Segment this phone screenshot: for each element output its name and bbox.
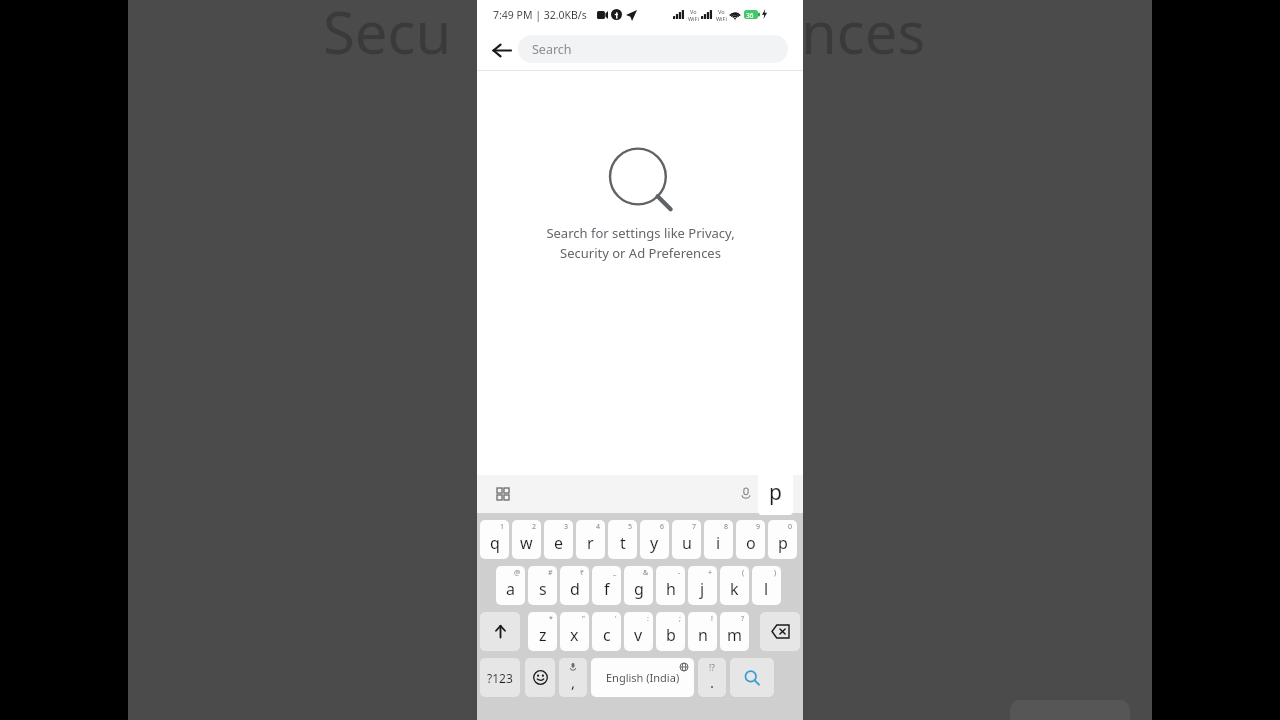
button[interactable]: Backspace — [760, 612, 800, 651]
staticText: q — [490, 532, 500, 554]
staticText: t — [620, 532, 626, 554]
button[interactable]: 6 — [640, 520, 669, 559]
staticText: f — [604, 578, 610, 600]
button[interactable]: 0 — [768, 520, 797, 559]
staticText: : — [647, 614, 649, 624]
button[interactable]: Voice input — [733, 481, 759, 507]
staticText: Vo — [718, 8, 725, 15]
staticText: Search — [532, 41, 572, 58]
staticText: 7:49 PM | 32.0KB/s — [493, 8, 587, 22]
button[interactable]: # — [528, 566, 557, 605]
staticText: r — [587, 532, 594, 554]
button[interactable]: ! — [688, 612, 717, 651]
staticText: ) — [774, 568, 777, 578]
staticText: w — [520, 532, 533, 554]
staticText: . — [710, 672, 715, 692]
staticText: p — [778, 532, 788, 554]
staticText: 5 — [628, 522, 633, 532]
staticText: d — [570, 578, 580, 600]
button[interactable]: Emoji — [525, 658, 555, 697]
button[interactable]: 2 — [512, 520, 541, 559]
staticText: " — [582, 614, 585, 624]
button[interactable]: Clipboard — [489, 480, 517, 508]
button[interactable]: 7 — [672, 520, 701, 559]
staticText: 4 — [596, 522, 601, 532]
button[interactable]: 9 — [736, 520, 765, 559]
staticText: ' — [615, 614, 617, 624]
button[interactable]: & — [624, 566, 653, 605]
button[interactable]: ) — [752, 566, 781, 605]
button[interactable]: : — [624, 612, 653, 651]
button[interactable]: ? — [720, 612, 749, 651]
staticText: i — [716, 532, 721, 554]
staticText: 0 — [788, 522, 793, 532]
staticText: p — [769, 478, 782, 507]
staticText: * — [549, 614, 553, 624]
staticText: g — [634, 578, 644, 600]
staticText: & — [643, 568, 649, 578]
button[interactable]: 1 — [480, 520, 509, 559]
staticText: n — [698, 624, 708, 646]
staticText: m — [727, 624, 742, 646]
staticText: s — [539, 578, 547, 600]
staticText: h — [666, 578, 676, 600]
staticText: 6 — [660, 522, 665, 532]
staticText: # — [548, 568, 553, 578]
staticText: 7 — [692, 522, 697, 532]
staticText: ₹ — [580, 568, 585, 578]
staticText: k — [730, 578, 739, 600]
button[interactable]: 5 — [608, 520, 637, 559]
button[interactable]: , — [559, 658, 587, 697]
staticText: ? — [741, 614, 745, 624]
staticText: b — [666, 624, 676, 646]
staticText: ; — [679, 614, 681, 624]
staticText: 9 — [756, 522, 761, 532]
button[interactable]: Shift — [480, 612, 520, 651]
staticText: 2 — [532, 522, 537, 532]
button[interactable]: ( — [720, 566, 749, 605]
staticText: l — [764, 578, 769, 600]
staticText: - — [678, 568, 681, 578]
button[interactable]: Search — [730, 658, 774, 697]
staticText: x — [570, 624, 579, 646]
staticText: e — [554, 532, 564, 554]
staticText: , — [571, 672, 576, 692]
button[interactable]: ' — [592, 612, 621, 651]
button[interactable]: @ — [496, 566, 525, 605]
button[interactable]: 3 — [544, 520, 573, 559]
staticText: 36 — [746, 11, 754, 20]
staticText: o — [746, 532, 756, 554]
staticText: + — [708, 568, 713, 578]
button[interactable]: * — [528, 612, 557, 651]
button[interactable]: English (India) — [591, 658, 694, 697]
button[interactable]: !? — [698, 658, 726, 697]
staticText: _ — [613, 568, 617, 578]
staticText: c — [603, 624, 611, 646]
button[interactable]: - — [656, 566, 685, 605]
button[interactable]: Back — [483, 32, 519, 68]
staticText: 1 — [500, 522, 505, 532]
button[interactable]: ₹ — [560, 566, 589, 605]
staticText: nces — [801, 0, 926, 71]
staticText: ( — [742, 568, 745, 578]
button[interactable]: + — [688, 566, 717, 605]
button[interactable]: 4 — [576, 520, 605, 559]
staticText: Search for settings like Privacy, Securi… — [546, 224, 735, 262]
staticText: WiFi — [688, 15, 699, 22]
button[interactable]: 8 — [704, 520, 733, 559]
staticText: ?123 — [487, 670, 513, 686]
staticText: WiFi — [716, 15, 727, 22]
staticText: 8 — [724, 522, 729, 532]
staticText: English (India) — [606, 670, 680, 685]
staticText: @ — [514, 568, 521, 578]
staticText: Secu — [323, 0, 452, 71]
button[interactable]: " — [560, 612, 589, 651]
button[interactable]: _ — [592, 566, 621, 605]
button[interactable]: ; — [656, 612, 685, 651]
staticText: !? — [709, 662, 715, 673]
button[interactable]: ?123 — [480, 658, 520, 697]
staticText: 3 — [564, 522, 569, 532]
staticText: u — [682, 532, 692, 554]
button[interactable]: Search — [518, 35, 788, 63]
staticText: a — [506, 578, 515, 600]
